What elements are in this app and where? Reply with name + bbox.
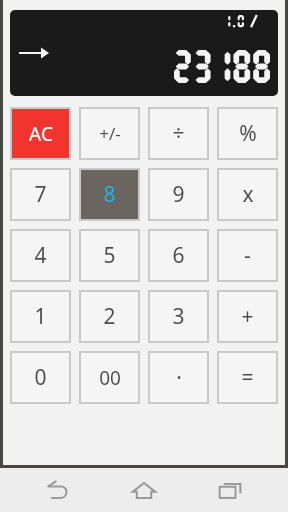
button[interactable]: +/- xyxy=(79,107,140,160)
staticText: 5 xyxy=(103,241,116,270)
button[interactable]: 9 xyxy=(148,168,209,221)
button[interactable]: 4 xyxy=(10,229,71,282)
button[interactable]: AC xyxy=(10,107,71,160)
button[interactable]: Back xyxy=(30,470,86,510)
button[interactable]: · xyxy=(148,351,209,404)
staticText: 8 xyxy=(103,180,116,209)
button[interactable]: = xyxy=(217,351,278,404)
button[interactable]: 00 xyxy=(79,351,140,404)
button[interactable]: 1 xyxy=(10,290,71,343)
staticText: + xyxy=(241,302,254,331)
staticText: - xyxy=(244,241,251,270)
button[interactable]: + xyxy=(217,290,278,343)
button[interactable]: % xyxy=(217,107,278,160)
button[interactable]: 6 xyxy=(148,229,209,282)
staticText: 4 xyxy=(34,241,47,270)
staticText: 7 xyxy=(34,180,47,209)
button[interactable]: ÷ xyxy=(148,107,209,160)
staticText: 0 xyxy=(34,363,47,392)
staticText: ÷ xyxy=(172,119,185,148)
button[interactable]: 7 xyxy=(10,168,71,221)
staticText: +/- xyxy=(99,122,121,145)
staticText: · xyxy=(176,363,182,392)
button[interactable]: 2 xyxy=(79,290,140,343)
staticText: 1 xyxy=(34,302,47,331)
staticText: = xyxy=(241,363,254,392)
staticText: 6 xyxy=(172,241,185,270)
staticText: AC xyxy=(29,121,53,147)
button[interactable]: 3 xyxy=(148,290,209,343)
button[interactable]: Recent apps xyxy=(202,470,258,510)
staticText: 00 xyxy=(99,365,121,391)
button[interactable]: 8 xyxy=(79,168,140,221)
button[interactable]: x xyxy=(217,168,278,221)
button[interactable]: 5 xyxy=(79,229,140,282)
staticText: 2 xyxy=(103,302,116,331)
button[interactable]: 0 xyxy=(10,351,71,404)
staticText: 9 xyxy=(172,180,185,209)
staticText: 3 xyxy=(172,302,185,331)
staticText: % xyxy=(239,119,257,148)
button[interactable]: - xyxy=(217,229,278,282)
staticText: x xyxy=(242,180,254,209)
button[interactable]: Home xyxy=(116,470,172,510)
